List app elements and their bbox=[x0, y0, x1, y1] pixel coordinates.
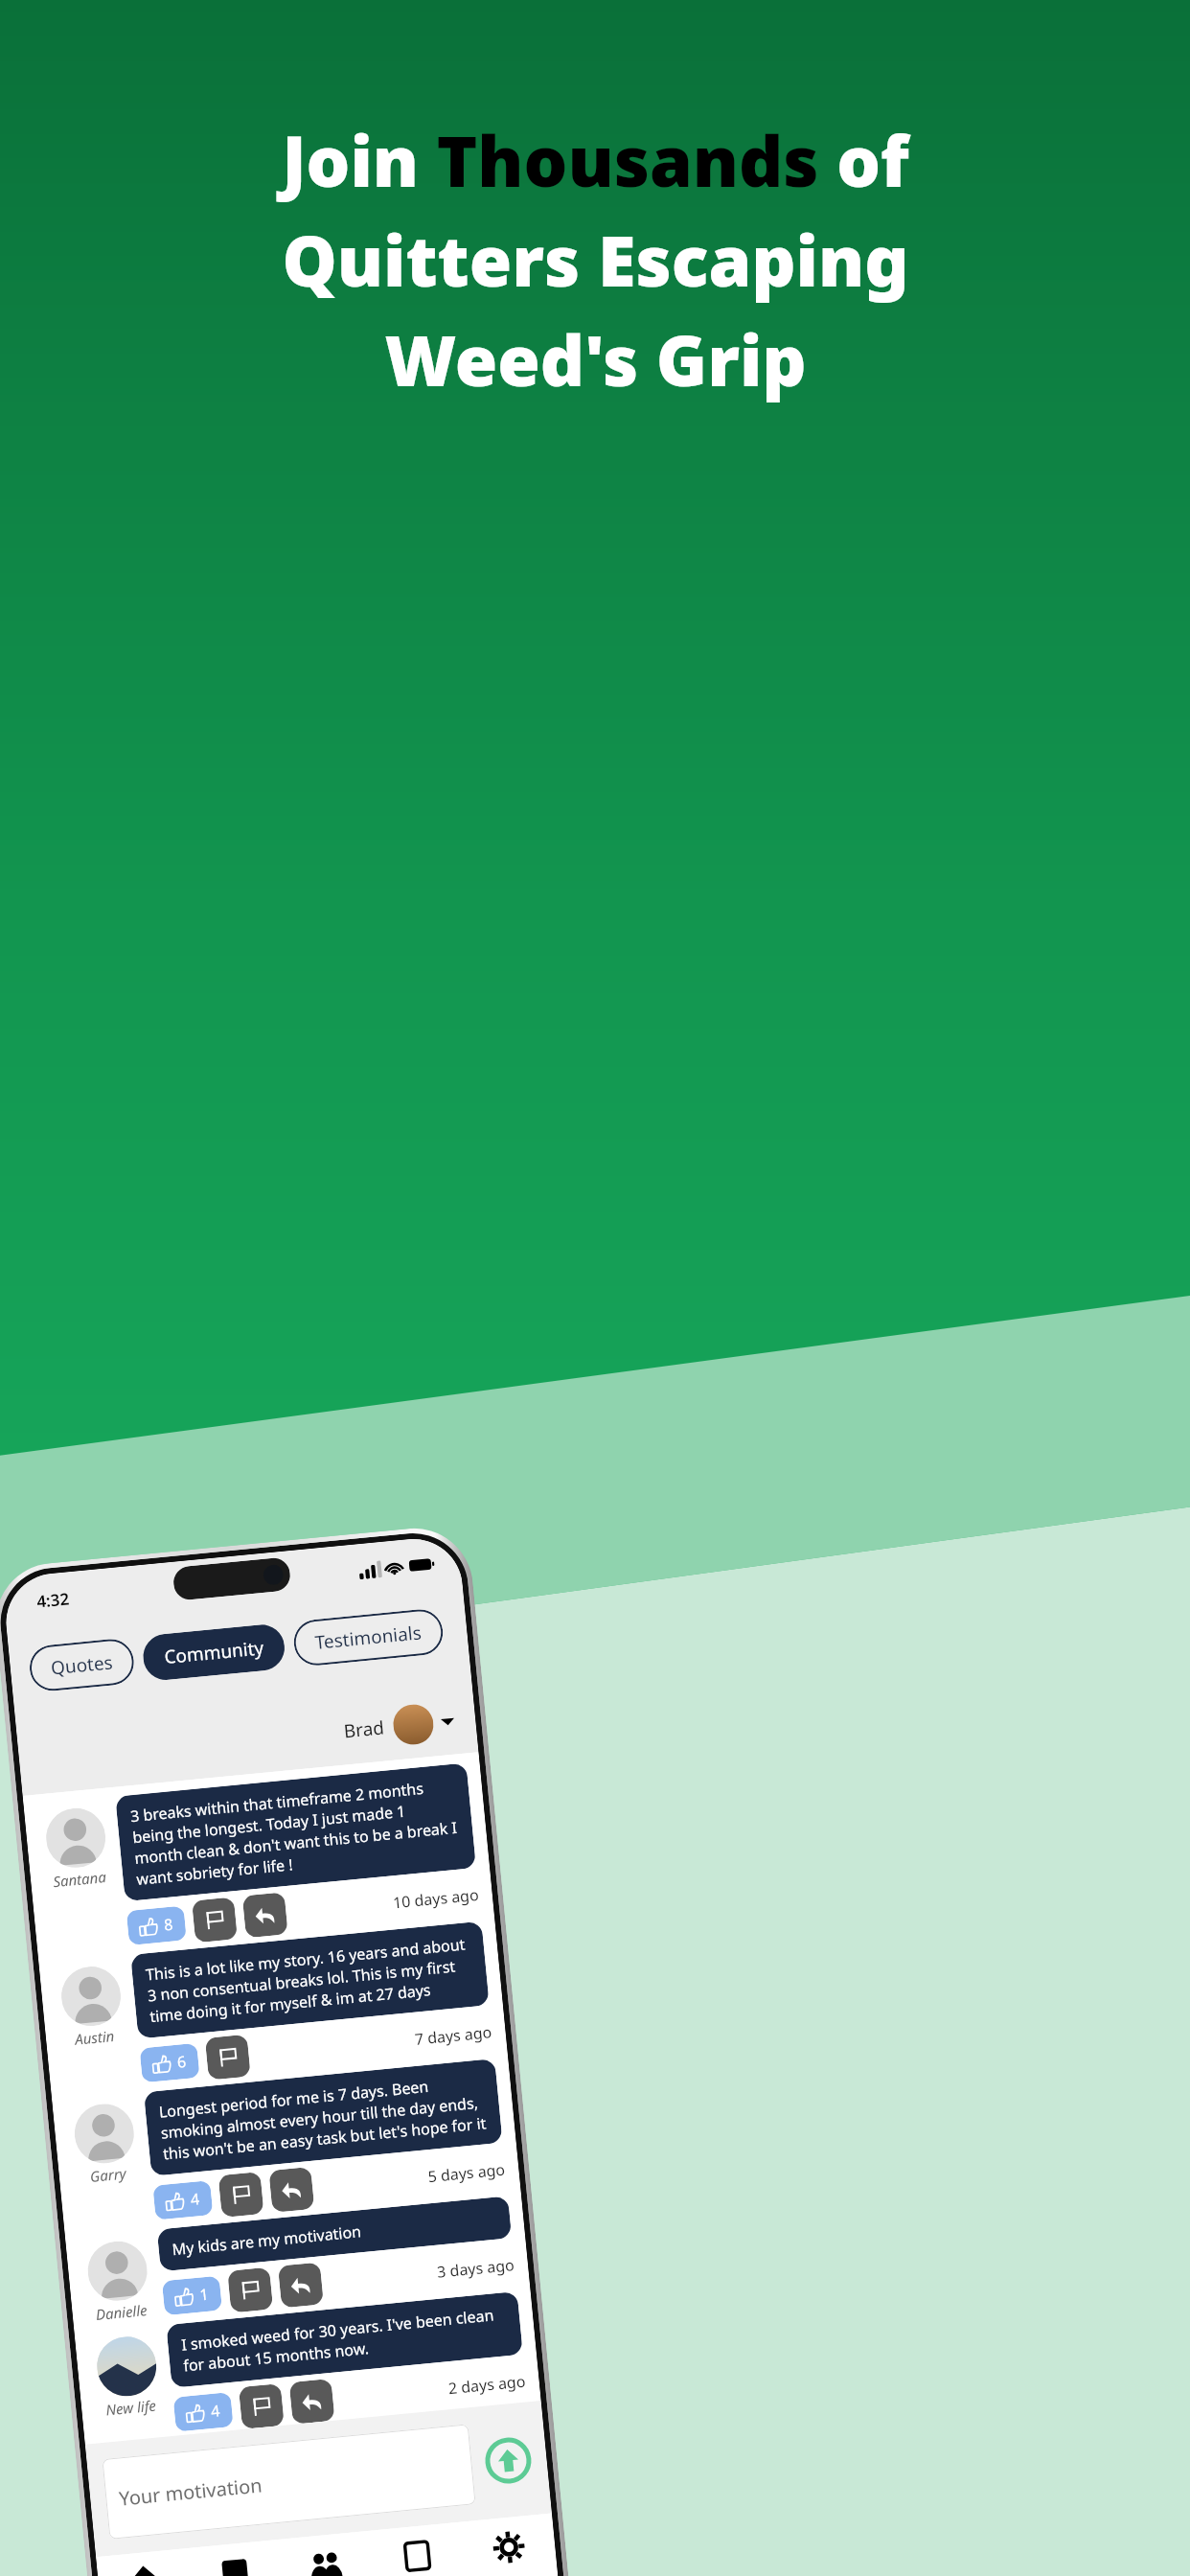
staticText: Weed's Grip bbox=[384, 312, 807, 406]
button[interactable]: Reply bbox=[242, 1892, 288, 1938]
button[interactable]: Quotes bbox=[28, 1637, 136, 1693]
button[interactable]: Testimonials bbox=[292, 1607, 445, 1667]
staticText: Brad bbox=[343, 1715, 386, 1744]
staticText: Quotes bbox=[50, 1650, 114, 1680]
button[interactable]: Settings bbox=[460, 2513, 558, 2576]
button[interactable]: Stats bbox=[187, 2540, 284, 2576]
staticText: 4 bbox=[190, 2188, 201, 2210]
staticText: 6 bbox=[176, 2051, 188, 2073]
button[interactable]: Report bbox=[192, 1897, 238, 1943]
button[interactable]: Home bbox=[96, 2548, 193, 2576]
staticText: This is a lot like my story. 16 years an… bbox=[145, 1933, 475, 2027]
staticText: My kids are my motivation bbox=[171, 2221, 363, 2260]
button[interactable]: Reply bbox=[278, 2262, 324, 2308]
staticText: Community bbox=[163, 1635, 265, 1669]
staticText: New life bbox=[105, 2395, 157, 2419]
staticText: I smoked weed for 30 years. I've been cl… bbox=[180, 2303, 509, 2376]
staticText: 4 bbox=[210, 2400, 222, 2422]
button[interactable]: Report bbox=[218, 2172, 264, 2218]
button[interactable]: 4 bbox=[173, 2392, 234, 2432]
staticText: 2 days ago bbox=[447, 2370, 527, 2399]
staticText: Testimonials bbox=[314, 1620, 423, 1655]
staticText: Your motivation bbox=[118, 2472, 263, 2512]
button[interactable]: Notes bbox=[369, 2522, 467, 2576]
staticText: Longest period for me is 7 days. Been sm… bbox=[158, 2070, 488, 2164]
staticText: 8 bbox=[163, 1913, 175, 1935]
button[interactable]: Send bbox=[483, 2436, 533, 2486]
button[interactable]: 3 breaks within that timeframe 2 months … bbox=[115, 1763, 476, 1902]
button[interactable]: I smoked weed for 30 years. I've been cl… bbox=[166, 2291, 523, 2388]
staticText: 1 bbox=[199, 2283, 210, 2305]
button[interactable]: Report bbox=[227, 2267, 273, 2313]
button[interactable]: Reply bbox=[269, 2167, 315, 2213]
button[interactable]: 4 bbox=[153, 2180, 213, 2220]
staticText: 10 days ago bbox=[392, 1884, 480, 1913]
staticText: 3 days ago bbox=[436, 2254, 515, 2283]
button[interactable]: Report bbox=[205, 2034, 251, 2080]
staticText: Austin bbox=[74, 2026, 116, 2049]
button[interactable]: This is a lot like my story. 16 years an… bbox=[130, 1921, 489, 2039]
other: Account menu bbox=[440, 1714, 455, 1729]
button[interactable]: 1 bbox=[162, 2276, 222, 2316]
button[interactable]: 6 bbox=[139, 2043, 200, 2083]
staticText: Garry bbox=[89, 2163, 127, 2186]
button[interactable]: Longest period for me is 7 days. Been sm… bbox=[144, 2058, 503, 2176]
staticText: 3 breaks within that timeframe 2 months … bbox=[130, 1775, 462, 1890]
staticText: 4:32 bbox=[36, 1587, 70, 1612]
staticText: Santana bbox=[52, 1867, 107, 1891]
button[interactable]: Your motivation bbox=[102, 2424, 476, 2539]
staticText: 5 days ago bbox=[427, 2159, 506, 2187]
button[interactable]: Report bbox=[238, 2383, 284, 2429]
button[interactable]: Community bbox=[141, 1623, 287, 1682]
button[interactable]: Reply bbox=[289, 2378, 335, 2424]
staticText: Quitters Escaping bbox=[282, 213, 909, 307]
button[interactable]: Community bbox=[277, 2531, 375, 2576]
staticText: Join Thousands of bbox=[282, 113, 909, 207]
staticText: Danielle bbox=[95, 2300, 148, 2324]
staticText: 7 days ago bbox=[414, 2021, 493, 2050]
button[interactable]: My kids are my motivation bbox=[157, 2196, 512, 2272]
button[interactable]: 8 bbox=[126, 1906, 187, 1945]
